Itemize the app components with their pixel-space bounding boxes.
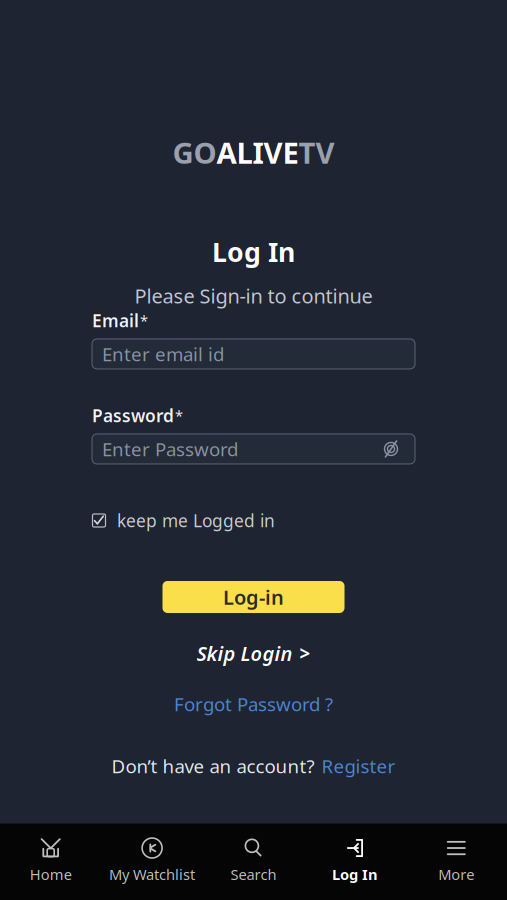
button[interactable]: Skip Login [188, 636, 318, 671]
button[interactable]: More [406, 829, 507, 892]
staticText: Don’t have an account? [111, 754, 314, 778]
button[interactable]: Home [0, 829, 101, 892]
button[interactable]: Show password [379, 438, 405, 460]
staticText: Log In [332, 864, 378, 884]
staticText: Log In [212, 234, 295, 269]
button[interactable]: Log In [304, 829, 406, 892]
staticText: > [299, 641, 310, 666]
staticText: * [140, 311, 148, 330]
staticText: Skip Login [196, 640, 292, 667]
staticText: keep me Logged in [117, 509, 275, 532]
staticText: * [175, 406, 183, 425]
staticText: Please Sign-in to continue [134, 282, 372, 309]
staticText: ALIVE [216, 133, 298, 172]
staticText: Home [30, 864, 72, 884]
staticText: Forgot Password ? [174, 691, 333, 716]
button[interactable]: Register [321, 754, 395, 778]
staticText: TV [298, 133, 334, 172]
staticText: Enter Password [102, 437, 238, 461]
staticText: Email [92, 309, 139, 332]
button[interactable]: My Watchlist [101, 829, 203, 892]
button[interactable]: Search [203, 829, 304, 892]
button[interactable]: Log-in [162, 581, 344, 613]
staticText: Log-in [223, 584, 284, 610]
staticText: Password [92, 404, 174, 427]
button[interactable]: keep me Logged in [92, 504, 415, 537]
staticText: More [438, 864, 474, 884]
staticText: GO [172, 133, 216, 172]
staticText: Search [230, 864, 276, 884]
staticText: Enter email id [102, 341, 224, 366]
staticText: Register [321, 754, 395, 778]
staticText: My Watchlist [109, 864, 195, 884]
button[interactable]: Forgot Password ? [166, 687, 341, 720]
